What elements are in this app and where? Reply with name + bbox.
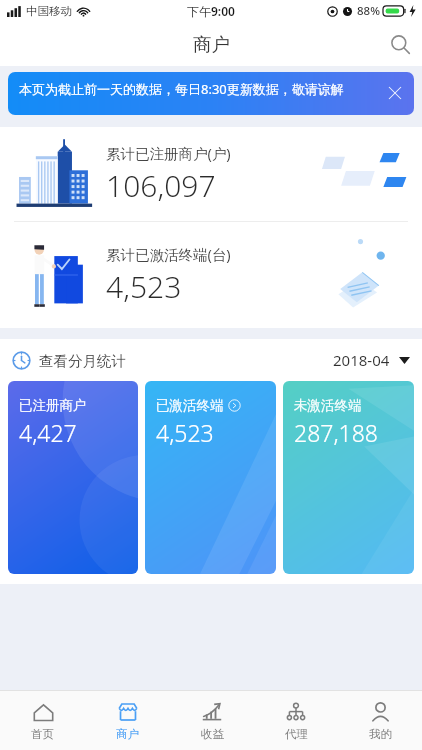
staticText: 收益 (201, 727, 224, 741)
button[interactable]: 累计已注册商户(户) (0, 127, 422, 221)
staticText: 88% (357, 3, 380, 19)
button[interactable]: 已注册商户 (8, 381, 138, 574)
staticText: 下午9:00 (187, 3, 235, 19)
staticText: 287,188 (294, 417, 378, 448)
button[interactable]: 商户 (85, 691, 170, 750)
staticText: 代理 (285, 727, 308, 741)
button[interactable]: 2018-04 (333, 350, 410, 370)
button[interactable]: 已激活终端 (145, 381, 276, 574)
staticText: 查看分月统计 (39, 352, 126, 370)
button[interactable]: 本页为截止前一天的数据，每日8:30更新数据，敬请谅解 (8, 72, 414, 115)
staticText: 已激活终端 (156, 397, 224, 414)
staticText: 累计已注册商户(户) (106, 143, 231, 163)
staticText: 中国移动 (26, 4, 72, 18)
staticText: 4,523 (106, 266, 182, 307)
staticText: 4,523 (156, 417, 214, 448)
staticText: 商户 (193, 33, 230, 56)
staticText: 未激活终端 (294, 397, 362, 414)
staticText: 首页 (31, 727, 54, 741)
button[interactable]: 关闭 (382, 80, 408, 106)
staticText: 4,427 (19, 417, 77, 448)
staticText: 我的 (369, 727, 392, 741)
button[interactable]: 未激活终端 (283, 381, 414, 574)
button[interactable]: 我的 (338, 691, 422, 750)
button[interactable]: 收益 (170, 691, 254, 750)
button[interactable]: 首页 (0, 691, 85, 750)
staticText: 106,097 (106, 165, 216, 206)
button[interactable]: 搜索 (378, 22, 422, 66)
staticText: 已注册商户 (19, 397, 87, 414)
staticText: 本页为截止前一天的数据，每日8:30更新数据，敬请谅解 (19, 80, 382, 98)
button[interactable]: 累计已激活终端(台) (0, 222, 422, 328)
staticText: 商户 (116, 727, 139, 741)
staticText: 累计已激活终端(台) (106, 244, 231, 264)
staticText: 2018-04 (333, 350, 390, 370)
button[interactable]: 查看分月统计 (12, 351, 126, 370)
button[interactable]: 代理 (254, 691, 338, 750)
